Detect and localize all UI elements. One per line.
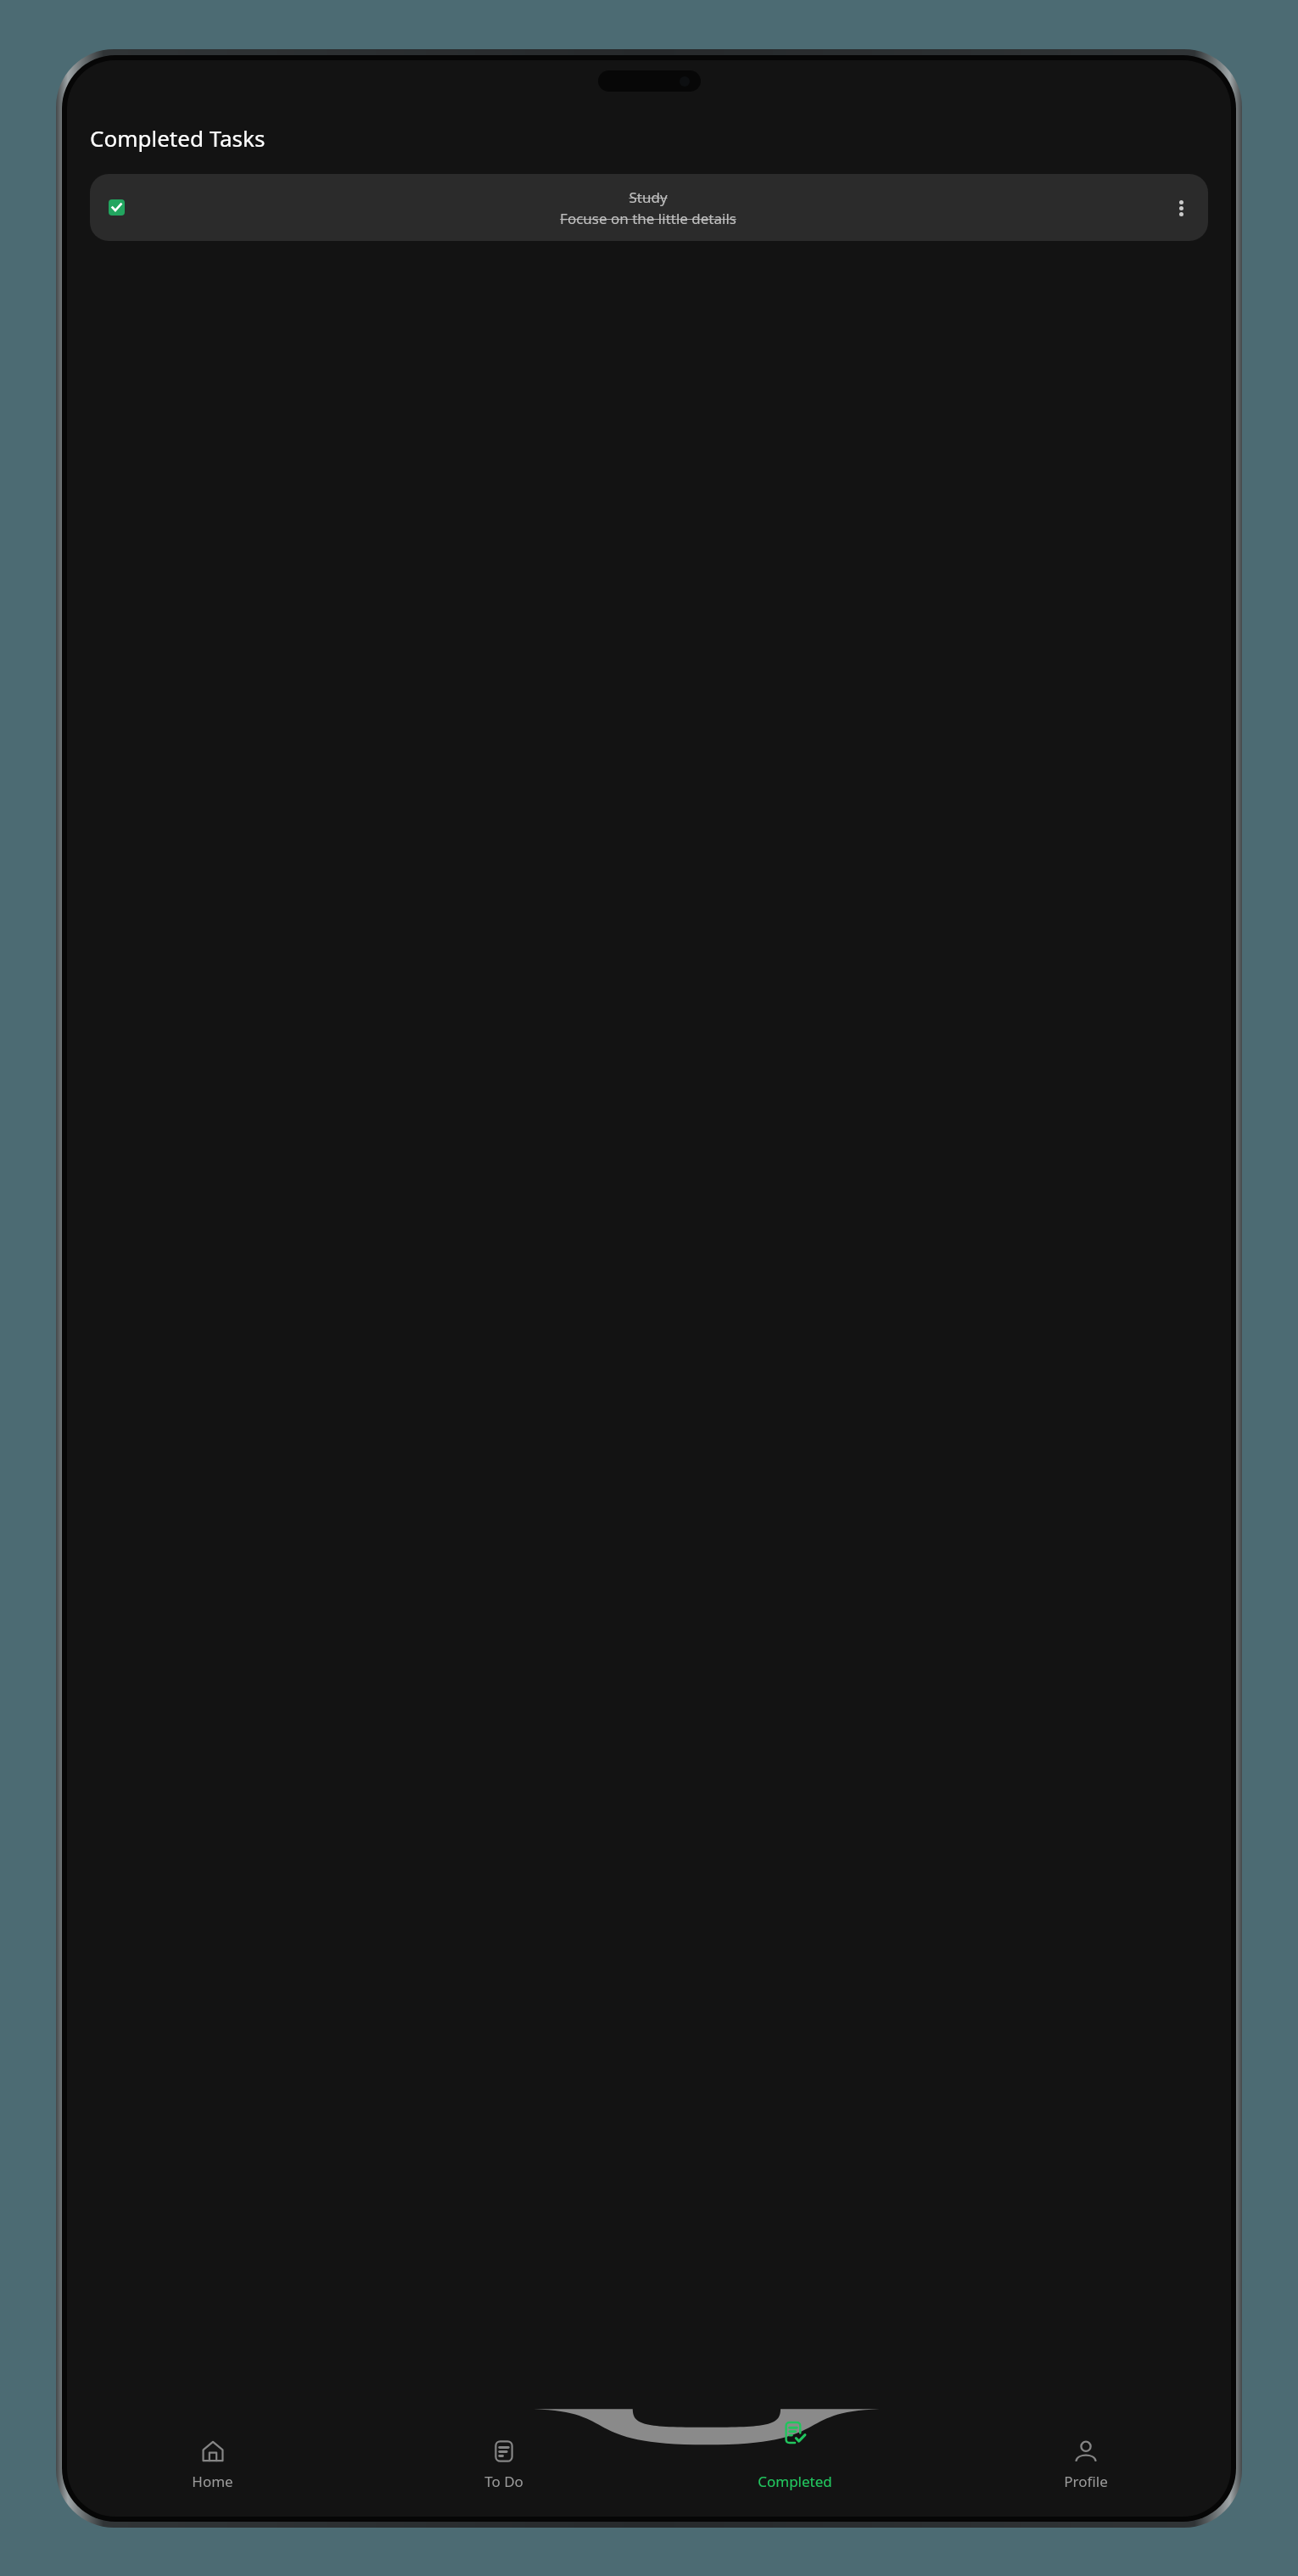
staticText: Profile bbox=[1064, 2472, 1108, 2491]
button[interactable]: Profile bbox=[940, 2403, 1231, 2505]
staticText: Focuse on the little details bbox=[560, 209, 736, 228]
staticText: Completed bbox=[758, 2472, 832, 2491]
staticText: Home bbox=[192, 2472, 233, 2491]
button[interactable]: Completed checkbox bbox=[90, 174, 1208, 241]
staticText: To Do bbox=[484, 2472, 523, 2491]
button[interactable]: To Do bbox=[358, 2403, 649, 2505]
other: Profile bbox=[1075, 2440, 1097, 2462]
button[interactable]: Home bbox=[67, 2403, 358, 2505]
other: To Do bbox=[493, 2440, 515, 2462]
other: Completed bbox=[784, 2422, 806, 2444]
staticText: Study bbox=[629, 188, 668, 207]
other: Home bbox=[202, 2440, 224, 2462]
button[interactable]: Completed bbox=[649, 2403, 940, 2505]
button[interactable]: Completed checkbox bbox=[109, 199, 125, 216]
button[interactable]: More options bbox=[1171, 198, 1191, 218]
staticText: Completed Tasks bbox=[90, 123, 266, 153]
